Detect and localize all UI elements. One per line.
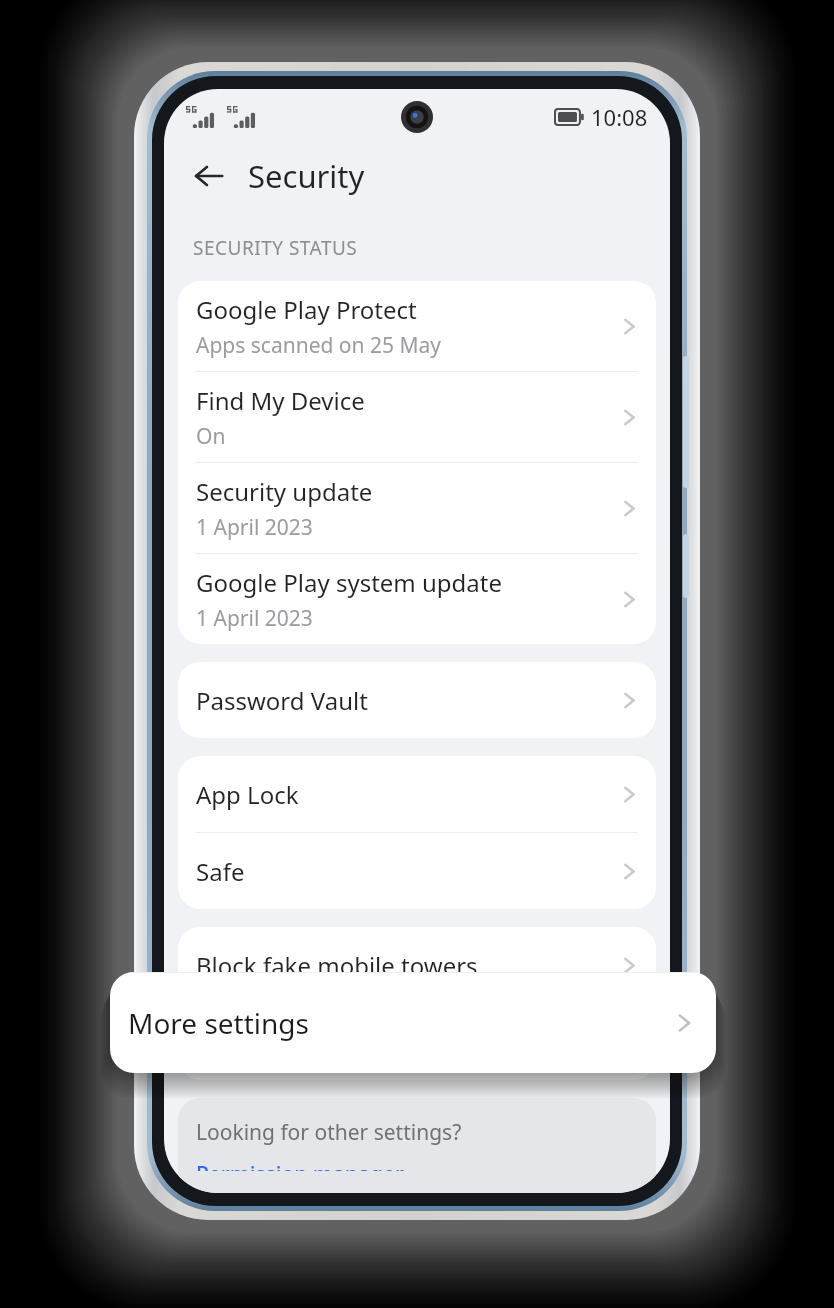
staticText: Security [248, 155, 365, 197]
staticText: 10:08 [591, 102, 648, 132]
staticText: Google Play Protect [196, 293, 417, 326]
staticText: More settings [196, 1026, 621, 1059]
button[interactable]: App Lock [178, 756, 656, 832]
staticText: Block fake mobile towers [196, 949, 621, 982]
button[interactable]: Password Vault [178, 662, 656, 738]
button[interactable]: Block fake mobile towers [178, 927, 656, 1003]
button[interactable]: Back [186, 153, 232, 199]
staticText: More settings [128, 1004, 675, 1042]
staticText: Security update [196, 475, 373, 508]
staticText: Password Vault [196, 684, 621, 717]
button[interactable]: More settings [178, 1004, 656, 1080]
staticText: Apps scanned on 25 May [196, 331, 442, 360]
staticText: 1 April 2023 [196, 513, 313, 542]
staticText: Safe [196, 855, 621, 888]
button[interactable]: Permission manager [196, 1160, 404, 1171]
staticText: On [196, 422, 226, 451]
button[interactable]: Safe [178, 833, 656, 909]
button[interactable]: Google Play Protect [178, 281, 656, 371]
button[interactable]: More settings [110, 972, 716, 1073]
staticText: SECURITY STATUS [193, 235, 358, 261]
staticText: Find My Device [196, 384, 365, 417]
staticText: App Lock [196, 778, 621, 811]
staticText: 1 April 2023 [196, 604, 313, 633]
button[interactable]: Power [683, 534, 689, 598]
staticText: Looking for other settings? [196, 1118, 462, 1147]
button[interactable]: Google Play system update [178, 554, 656, 644]
staticText: Google Play system update [196, 566, 503, 599]
button[interactable]: Security update [178, 463, 656, 553]
button[interactable]: Find My Device [178, 372, 656, 462]
